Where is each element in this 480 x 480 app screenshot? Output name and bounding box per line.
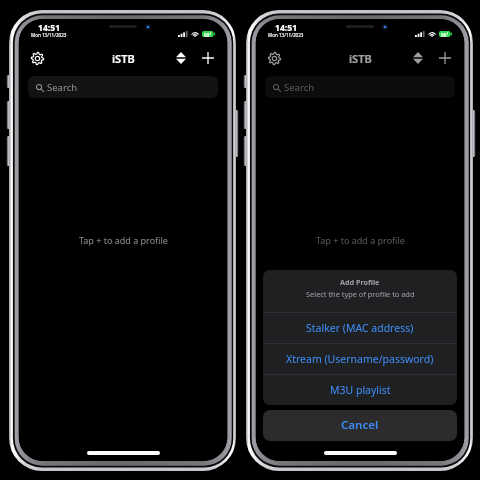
staticText: Search (284, 81, 315, 94)
button[interactable]: Search (28, 76, 218, 98)
button[interactable]: Add profile (435, 48, 455, 68)
button[interactable]: Stalker (MAC address) (263, 313, 457, 343)
staticText: Search (47, 81, 78, 94)
staticText: 98 (441, 32, 447, 38)
staticText: iSTB (349, 51, 372, 66)
button[interactable]: Sort (170, 47, 192, 69)
staticText: Add Profile (340, 277, 380, 287)
staticText: iSTB (112, 51, 135, 66)
button[interactable]: Cancel (263, 410, 457, 441)
staticText: Tap + to add a profile (79, 234, 168, 246)
staticText: Mon 13/11/2023 (268, 32, 304, 38)
button[interactable]: Settings (264, 48, 284, 68)
button[interactable]: Sort (407, 47, 429, 69)
staticText: Mon 13/11/2023 (31, 32, 67, 38)
staticText: 98 (204, 32, 210, 38)
staticText: Stalker (MAC address) (306, 321, 414, 335)
staticText: Xtream (Username/password) (286, 352, 434, 366)
button[interactable]: M3U playlist (263, 375, 457, 405)
staticText: Cancel (341, 417, 379, 433)
button[interactable]: Search (265, 76, 455, 98)
staticText: Select the type of profile to add (306, 289, 415, 299)
staticText: M3U playlist (330, 383, 391, 397)
staticText: 14:51 (38, 22, 61, 34)
staticText: Tap + to add a profile (316, 234, 405, 246)
button[interactable]: Xtream (Username/password) (263, 344, 457, 374)
button[interactable]: Add profile (198, 48, 218, 68)
staticText: 14:51 (275, 22, 298, 34)
button[interactable]: Settings (27, 48, 47, 68)
